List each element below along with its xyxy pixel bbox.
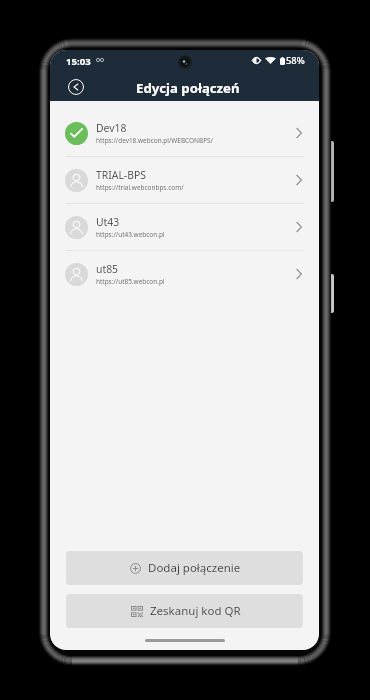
button[interactable]: Dodaj połączenie <box>66 551 303 585</box>
staticText: Zeskanuj kod QR <box>150 603 241 619</box>
staticText: Dodaj połączenie <box>148 560 241 576</box>
staticText: https://dev18.webcon.pl/WEBCONBPS/ <box>96 136 213 145</box>
button[interactable]: Dev18 <box>50 110 319 157</box>
button[interactable]: ut85 <box>50 251 319 297</box>
button[interactable]: Zeskanuj kod QR <box>66 594 303 628</box>
staticText: Edycja połączeń <box>136 79 240 97</box>
staticText: https://ut85.webcon.pl <box>96 277 165 286</box>
button[interactable]: TRIAL-BPS <box>50 157 319 204</box>
button[interactable]: Ut43 <box>50 204 319 251</box>
staticText: TRIAL-BPS <box>96 168 146 182</box>
staticText: Ut43 <box>96 215 120 229</box>
staticText: Dev18 <box>96 121 127 135</box>
staticText: 15:03 <box>66 55 91 68</box>
staticText: 58% <box>286 54 305 67</box>
button[interactable]: Back <box>63 74 89 100</box>
staticText: https://ut43.webcon.pl <box>96 230 165 239</box>
staticText: https://trial.webconbps.com/ <box>96 183 184 192</box>
staticText: ut85 <box>96 262 119 276</box>
